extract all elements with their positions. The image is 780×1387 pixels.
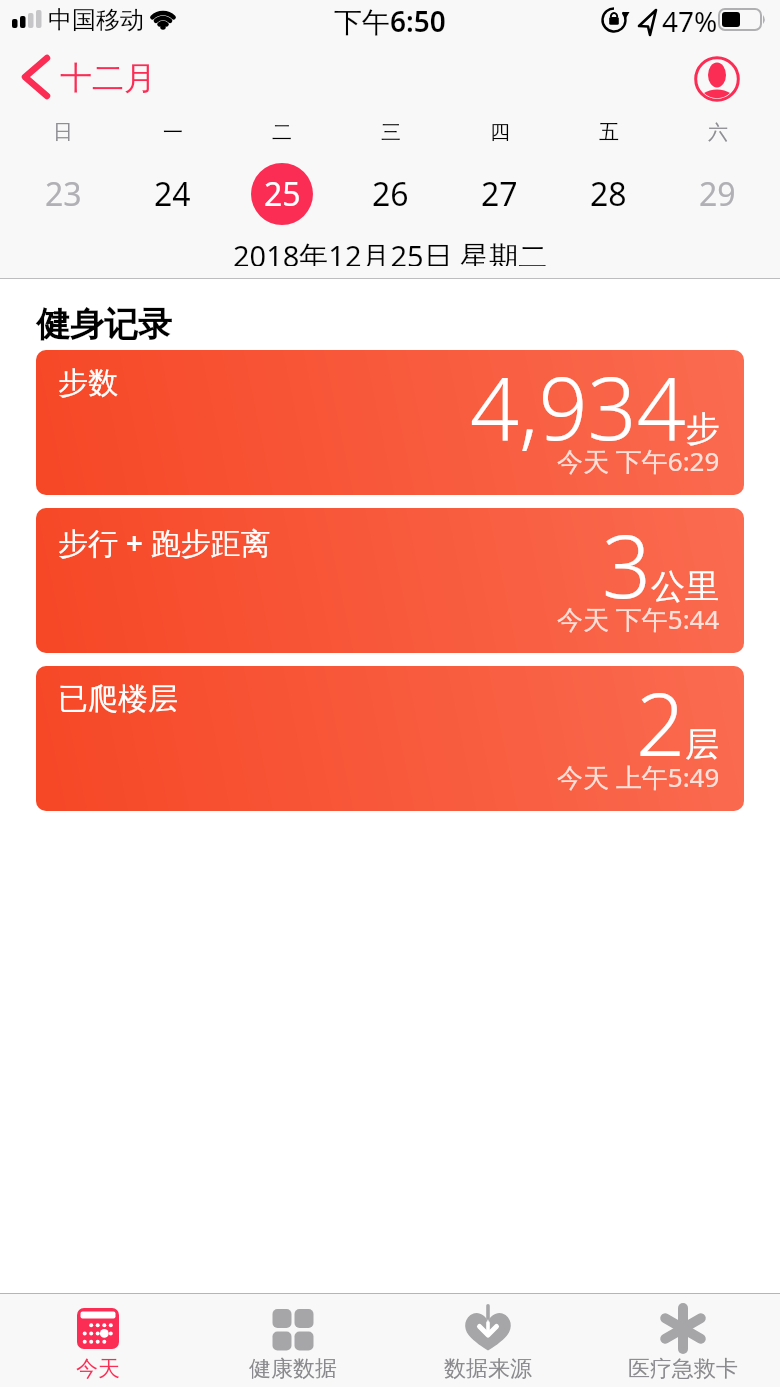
staticText: 下午6:50 [334,2,446,40]
button[interactable]: 健康数据 [195,1294,390,1387]
staticText: 3公里 [602,508,720,623]
staticText: 29 [699,172,736,216]
button[interactable]: 28 [554,148,663,240]
staticText: 健康数据 [249,1355,337,1383]
staticText: 二 [272,120,292,145]
staticText: 23 [45,172,82,216]
staticText: 步数 [58,364,118,402]
button[interactable]: 今天 [0,1294,195,1387]
staticText: 中国移动 [48,5,144,35]
button[interactable]: 医疗急救卡 [585,1294,780,1387]
staticText: 今天 下午6:29 [557,443,720,479]
staticText: 2018年12月25日 星期二 [233,236,548,266]
staticText: 4,934步 [470,350,720,465]
staticText: 28 [590,172,627,216]
staticText: 步行 + 跑步距离 [58,522,271,563]
staticText: 今天 上午5:49 [557,759,720,795]
staticText: 健身记录 [36,303,172,346]
button[interactable]: 已爬楼层 [36,666,744,811]
button[interactable]: 29 [663,148,772,240]
button[interactable]: 步数 [36,350,744,495]
staticText: 六 [708,120,728,145]
button[interactable]: 数据来源 [390,1294,585,1387]
button[interactable]: 23 [8,148,118,240]
staticText: 24 [154,172,191,216]
staticText: 一 [163,120,183,145]
staticText: 五 [599,120,619,145]
button[interactable]: 27 [445,148,554,240]
staticText: 十二月 [60,58,156,98]
staticText: 四 [490,120,510,145]
button[interactable] [694,56,740,102]
staticText: 数据来源 [444,1355,532,1383]
button[interactable]: 26 [336,148,445,240]
staticText: 47% [662,2,718,40]
staticText: 已爬楼层 [58,680,178,718]
button[interactable]: 24 [118,148,227,240]
staticText: 三 [381,120,401,145]
staticText: 医疗急救卡 [628,1355,738,1383]
staticText: 26 [372,172,409,216]
button[interactable]: 步行 + 跑步距离 [36,508,744,653]
staticText: 日 [53,120,73,145]
staticText: 27 [481,172,518,216]
staticText: 2层 [636,666,720,781]
staticText: 今天 下午5:44 [557,601,720,637]
button[interactable]: 25 [227,148,336,240]
staticText: 今天 [76,1355,120,1383]
staticText: 25 [264,172,301,216]
button[interactable]: 十二月 [18,40,156,116]
